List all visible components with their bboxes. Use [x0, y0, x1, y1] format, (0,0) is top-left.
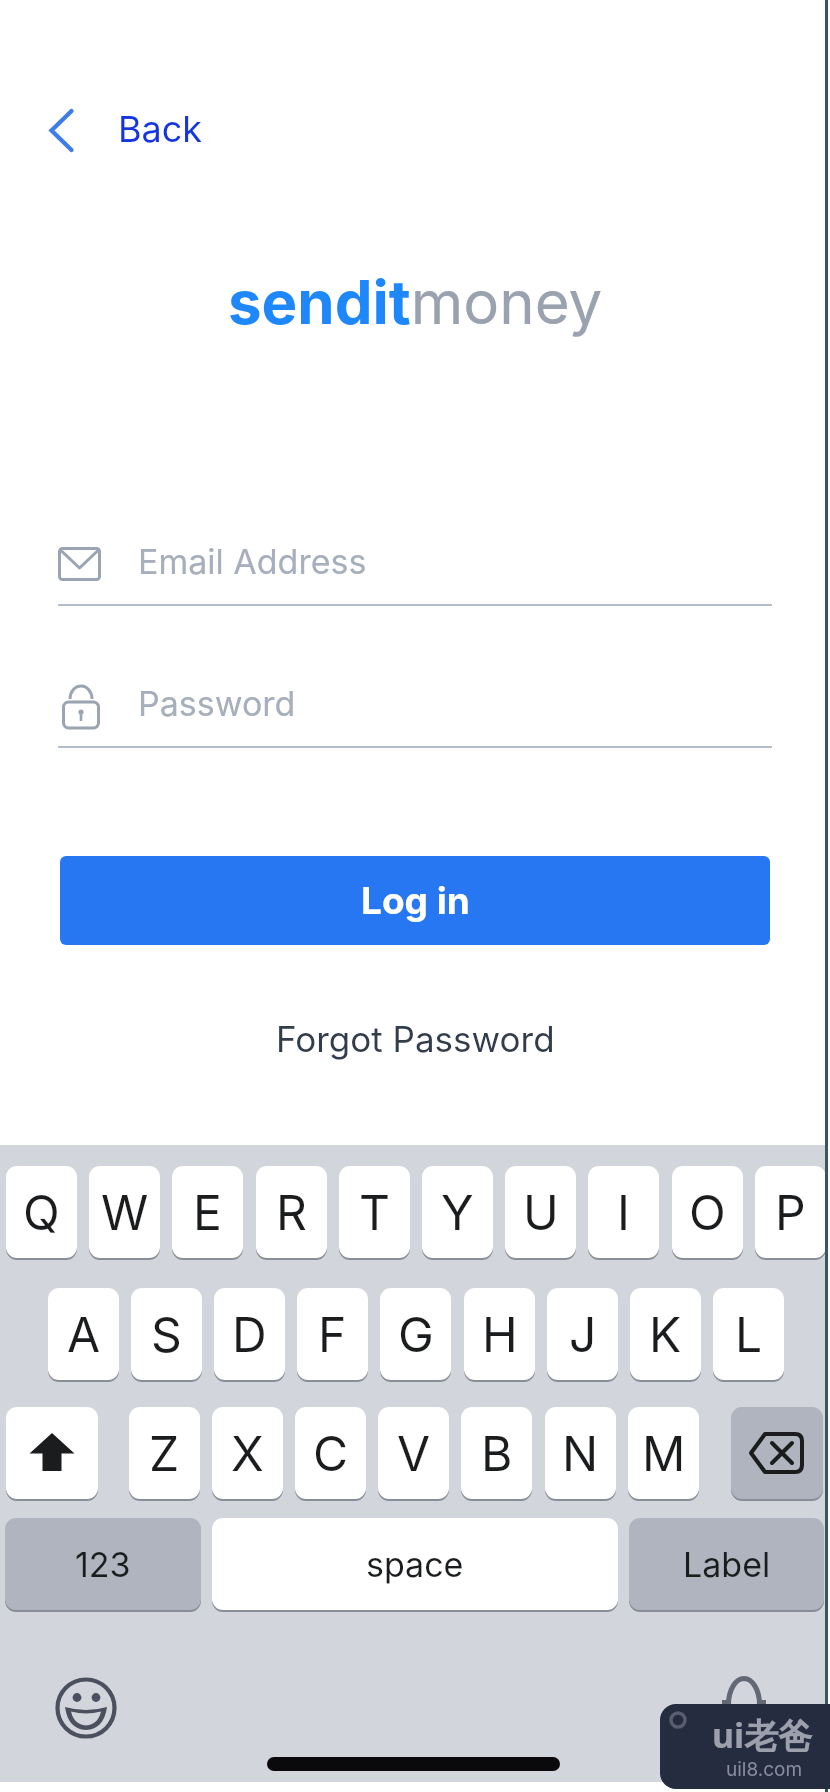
staticText: Log in: [361, 878, 470, 923]
staticText: I: [617, 1183, 630, 1241]
button[interactable]: I: [588, 1166, 659, 1258]
button[interactable]: P: [755, 1166, 826, 1258]
staticText: ui老爸: [712, 1712, 813, 1758]
staticText: G: [398, 1305, 434, 1363]
button[interactable]: O: [672, 1166, 743, 1258]
staticText: T: [359, 1183, 390, 1241]
staticText: R: [276, 1183, 307, 1241]
button[interactable]: V: [378, 1407, 449, 1499]
staticText: N: [562, 1424, 599, 1482]
button[interactable]: U: [505, 1166, 576, 1258]
staticText: K: [649, 1305, 682, 1363]
button[interactable]: G: [380, 1288, 451, 1380]
button[interactable]: Log in: [60, 856, 770, 945]
staticText: Label: [683, 1544, 771, 1585]
button[interactable]: A: [48, 1288, 119, 1380]
button[interactable]: 123: [5, 1518, 201, 1610]
button[interactable]: Back: [40, 100, 210, 160]
staticText: Y: [441, 1183, 474, 1241]
button[interactable]: X: [212, 1407, 283, 1499]
button[interactable]: Z: [129, 1407, 200, 1499]
button[interactable]: [714, 1672, 774, 1722]
staticText: U: [523, 1183, 559, 1241]
staticText: M: [642, 1424, 686, 1482]
staticText: B: [481, 1424, 513, 1482]
staticText: P: [775, 1183, 806, 1241]
staticText: senditmoney: [228, 266, 603, 339]
staticText: V: [397, 1424, 431, 1482]
button[interactable]: Forgot Password: [276, 1018, 555, 1060]
staticText: S: [151, 1305, 182, 1363]
staticText: A: [67, 1305, 101, 1363]
button[interactable]: D: [214, 1288, 285, 1380]
button[interactable]: Label: [629, 1518, 824, 1610]
button[interactable]: K: [630, 1288, 701, 1380]
button[interactable]: N: [545, 1407, 616, 1499]
staticText: O: [689, 1183, 726, 1241]
button[interactable]: J: [547, 1288, 618, 1380]
staticText: W: [101, 1183, 149, 1241]
button[interactable]: H: [464, 1288, 535, 1380]
button[interactable]: W: [89, 1166, 160, 1258]
button[interactable]: Q: [6, 1166, 77, 1258]
button[interactable]: [731, 1407, 823, 1499]
staticText: Back: [118, 107, 203, 151]
staticText: D: [232, 1305, 267, 1363]
staticText: J: [569, 1305, 597, 1363]
button[interactable]: space: [212, 1518, 618, 1610]
staticText: Q: [23, 1183, 60, 1241]
staticText: 123: [75, 1544, 131, 1585]
button[interactable]: B: [461, 1407, 532, 1499]
staticText: uil8.com: [726, 1758, 803, 1781]
button[interactable]: [6, 1407, 98, 1499]
button[interactable]: C: [295, 1407, 366, 1499]
staticText: H: [482, 1305, 518, 1363]
button[interactable]: R: [256, 1166, 327, 1258]
staticText: L: [735, 1305, 763, 1363]
staticText: E: [193, 1183, 222, 1241]
button[interactable]: S: [131, 1288, 202, 1380]
staticText: Email Address: [138, 541, 367, 582]
staticText: F: [318, 1305, 347, 1363]
button[interactable]: F: [297, 1288, 368, 1380]
button[interactable]: M: [628, 1407, 699, 1499]
button[interactable]: L: [713, 1288, 784, 1380]
button[interactable]: Y: [422, 1166, 493, 1258]
button[interactable]: E: [172, 1166, 243, 1258]
staticText: Z: [149, 1424, 180, 1482]
staticText: space: [366, 1544, 464, 1585]
staticText: Password: [138, 683, 296, 724]
staticText: C: [313, 1424, 349, 1482]
button[interactable]: T: [339, 1166, 410, 1258]
staticText: X: [231, 1424, 264, 1482]
button[interactable]: [55, 1677, 117, 1739]
